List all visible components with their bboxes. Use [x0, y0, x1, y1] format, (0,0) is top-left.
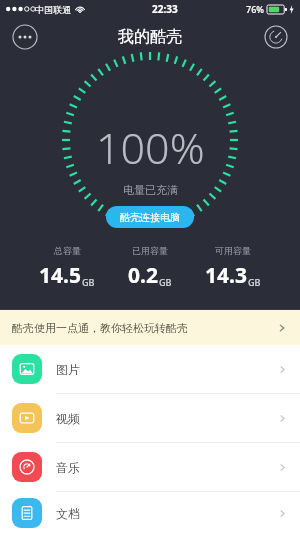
staticText: 酷壳连接电脑: [120, 211, 180, 224]
staticText: 14.3: [205, 261, 247, 290]
button[interactable]: More options: [12, 24, 38, 50]
button[interactable]: 音乐: [0, 443, 300, 491]
staticText: 文档: [56, 506, 277, 521]
staticText: 0.2: [128, 261, 158, 290]
button[interactable]: Speed test: [264, 25, 288, 49]
staticText: 视频: [56, 411, 277, 426]
staticText: GB: [159, 276, 172, 288]
button[interactable]: 文档: [0, 492, 300, 534]
staticText: 中国联通: [35, 4, 71, 15]
staticText: 酷壳使用一点通，教你轻松玩转酷壳: [12, 321, 276, 335]
staticText: 76%: [246, 3, 264, 15]
staticText: 图片: [56, 362, 277, 377]
staticText: 可用容量: [215, 245, 251, 256]
staticText: 总容量: [54, 245, 81, 256]
staticText: GB: [248, 276, 261, 288]
staticText: 我的酷壳: [118, 27, 182, 47]
staticText: 音乐: [56, 460, 277, 475]
staticText: GB: [82, 276, 95, 288]
staticText: 22:33: [152, 2, 178, 16]
button[interactable]: 酷壳使用一点通，教你轻松玩转酷壳: [0, 310, 300, 345]
staticText: 14.5: [39, 261, 81, 290]
button[interactable]: 视频: [0, 394, 300, 442]
staticText: 100%: [96, 118, 205, 177]
staticText: 已用容量: [132, 245, 168, 256]
button[interactable]: 图片: [0, 345, 300, 393]
button[interactable]: 酷壳连接电脑: [106, 206, 194, 228]
staticText: 电量已充满: [123, 183, 178, 197]
